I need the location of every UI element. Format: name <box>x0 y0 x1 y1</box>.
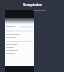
staticText: Snaptube <box>23 2 42 7</box>
staticText: Fast video downloader <box>19 8 46 11</box>
